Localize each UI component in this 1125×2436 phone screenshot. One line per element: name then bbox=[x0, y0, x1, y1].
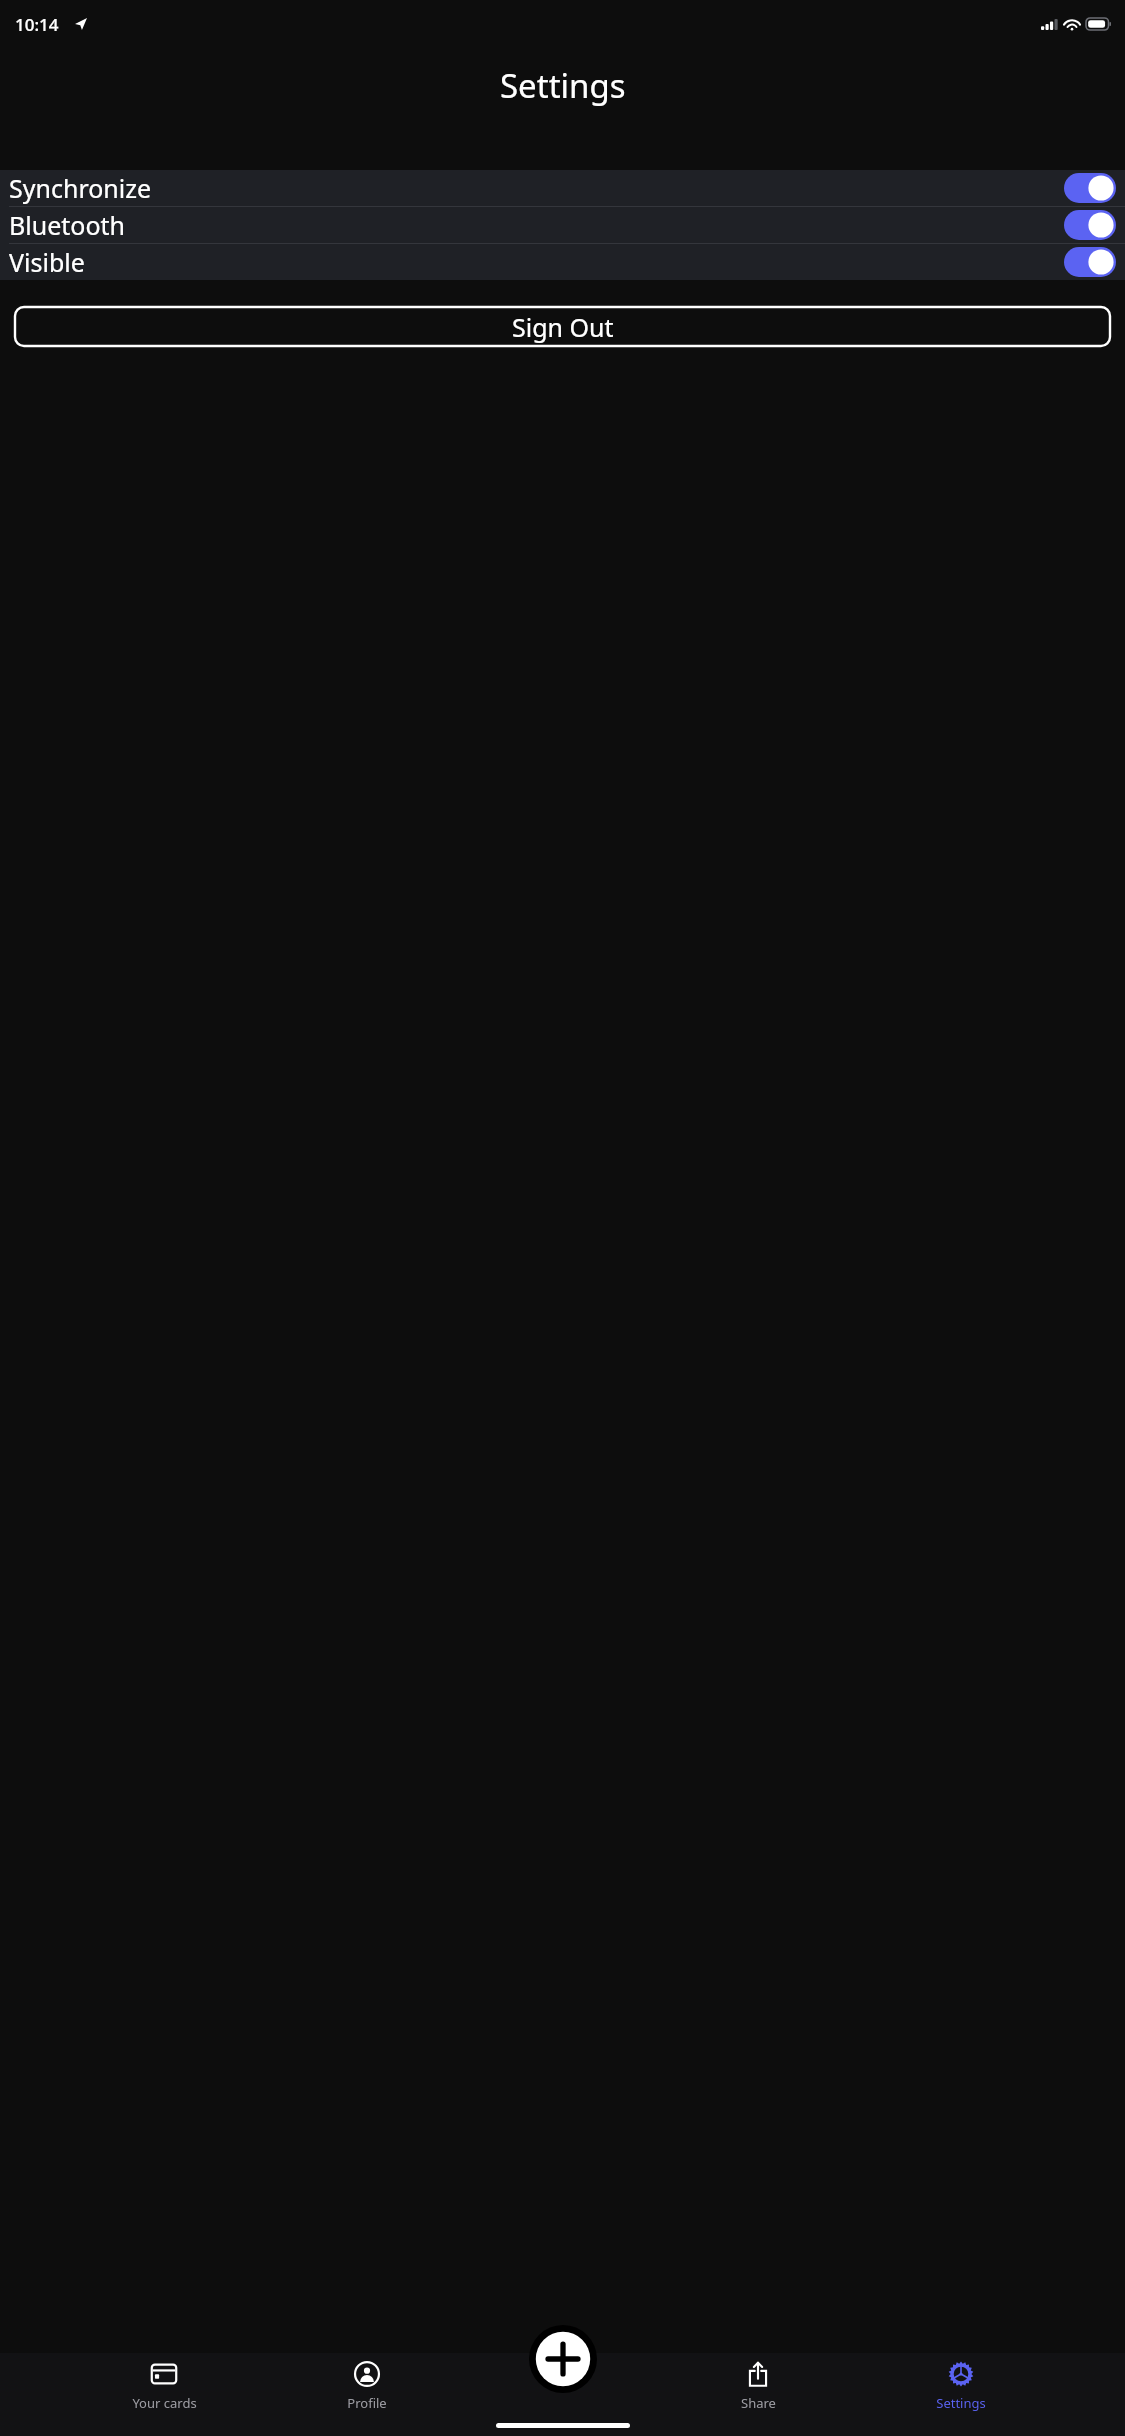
button[interactable]: Profile bbox=[328, 2361, 406, 2412]
button[interactable]: Synchronize bbox=[0, 170, 1125, 206]
staticText: Settings bbox=[936, 2394, 986, 2412]
staticText: 10:14 bbox=[15, 13, 59, 36]
button[interactable]: Your cards bbox=[125, 2361, 203, 2412]
staticText: Settings bbox=[500, 63, 626, 108]
staticText: Share bbox=[741, 2394, 776, 2412]
button[interactable]: Settings bbox=[922, 2361, 1000, 2412]
staticText: Profile bbox=[347, 2394, 387, 2412]
staticText: Sign Out bbox=[512, 310, 614, 344]
button[interactable]: Visible bbox=[0, 244, 1125, 280]
button[interactable]: Sign Out bbox=[15, 307, 1110, 346]
staticText: Visible bbox=[9, 245, 85, 279]
button[interactable]: Share bbox=[719, 2361, 797, 2412]
staticText: Your cards bbox=[132, 2394, 197, 2412]
staticText: Bluetooth bbox=[9, 208, 126, 242]
button[interactable]: Bluetooth bbox=[0, 207, 1125, 243]
staticText: Synchronize bbox=[9, 171, 152, 205]
button[interactable]: Add bbox=[529, 2325, 597, 2393]
